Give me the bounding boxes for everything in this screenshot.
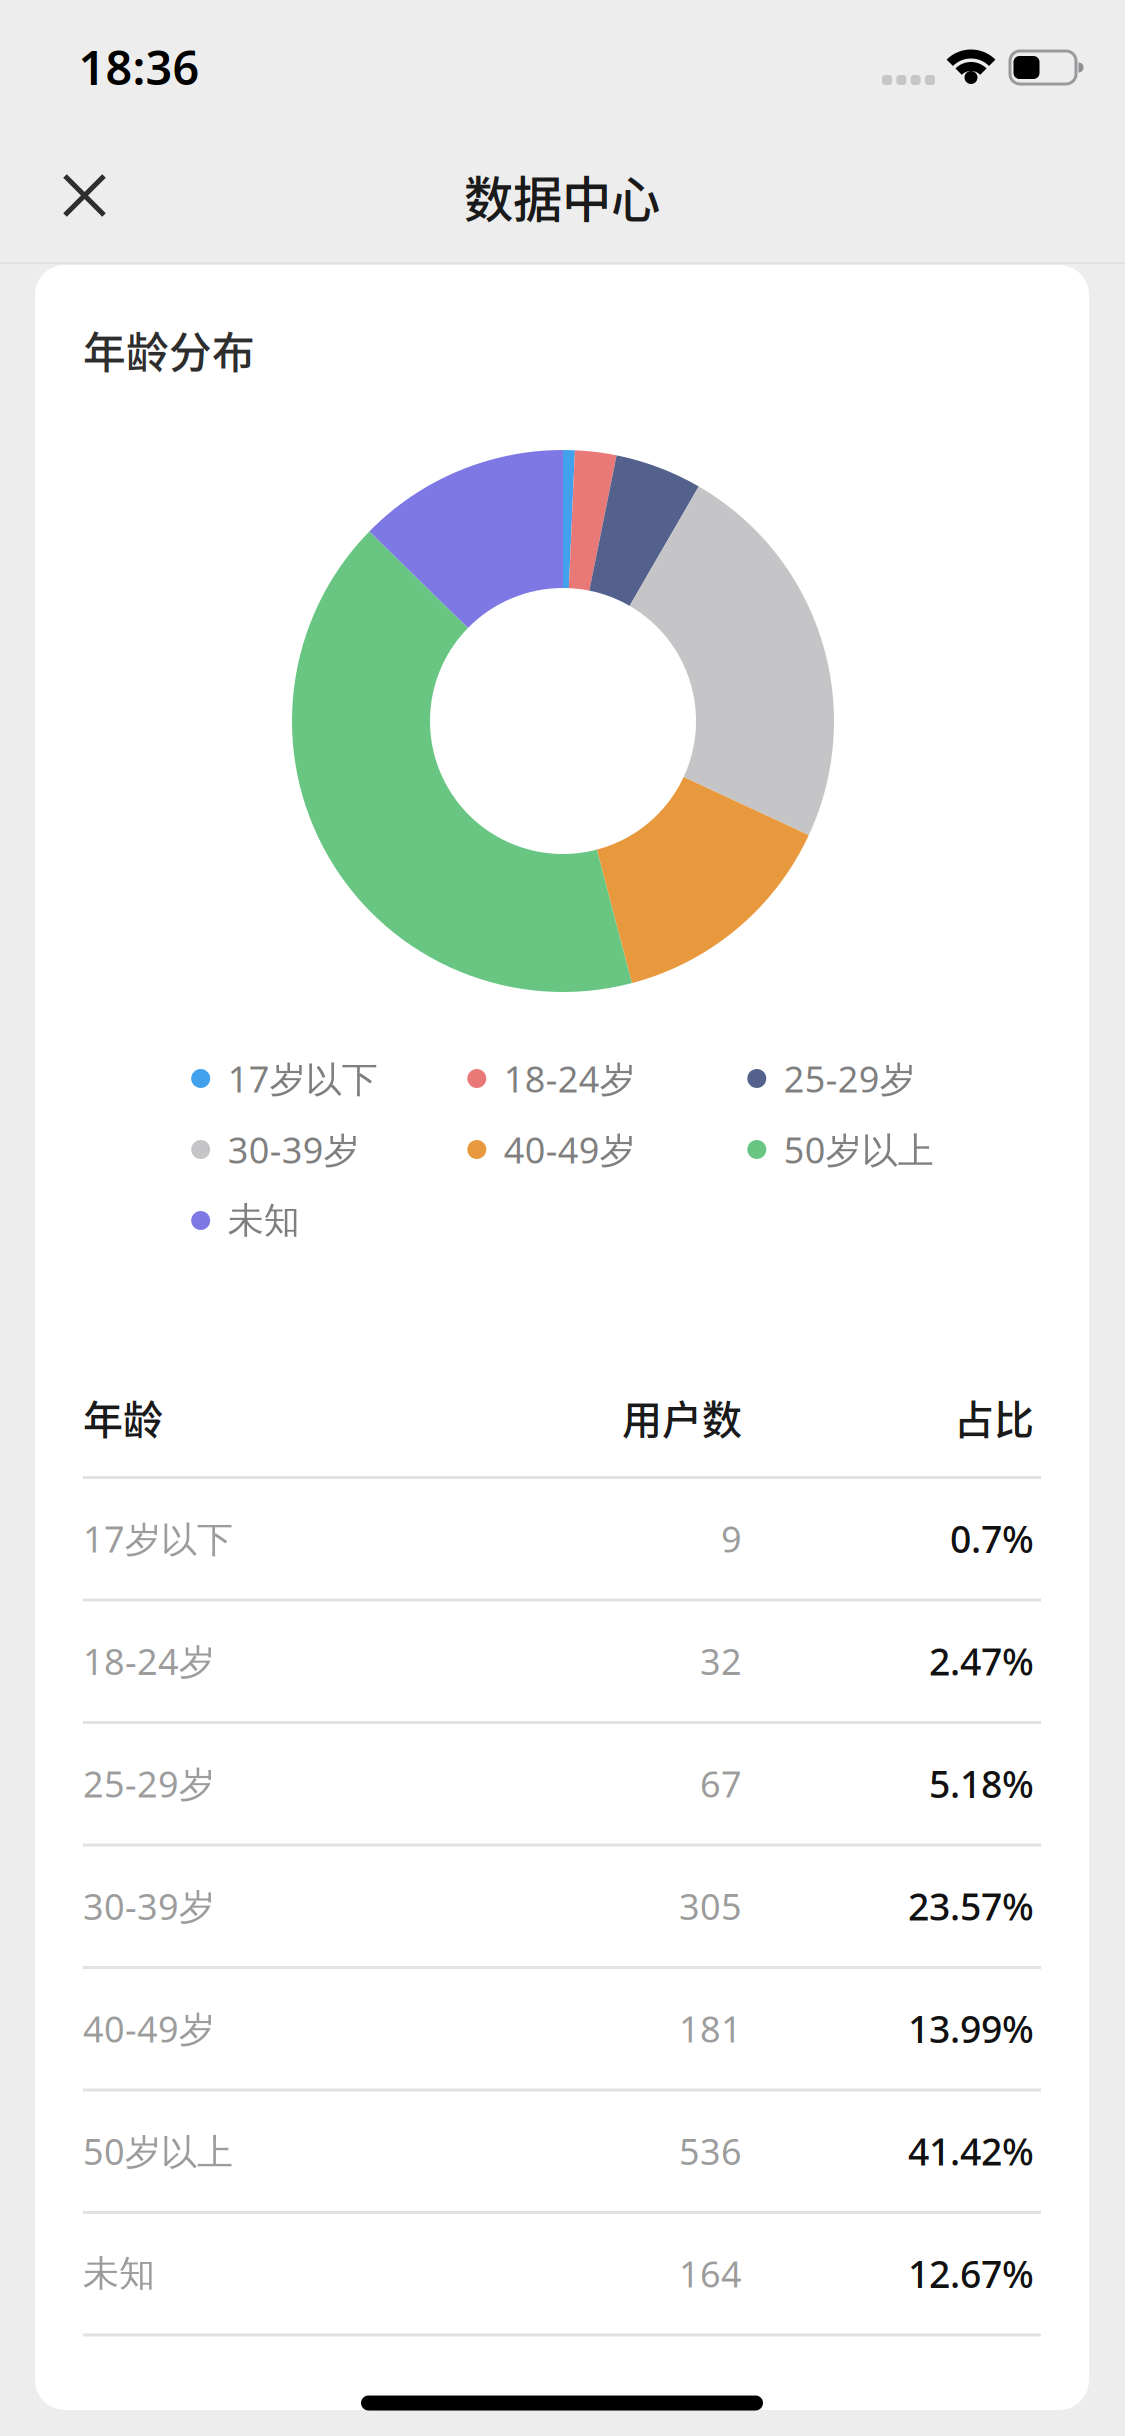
staticText: 17岁以下 xyxy=(83,1515,233,1562)
staticText: 25-29岁 xyxy=(83,1760,215,1807)
button[interactable]: Close xyxy=(24,135,144,255)
staticText: 181 xyxy=(679,2005,742,2052)
staticText: 32 xyxy=(700,1637,742,1685)
staticText: 50岁以上 xyxy=(784,1126,934,1173)
staticText: 23.57% xyxy=(908,1881,1034,1931)
staticText: 17岁以下 xyxy=(228,1055,378,1102)
staticText: 未知 xyxy=(228,1198,300,1243)
staticText: 用户数 xyxy=(622,1388,742,1446)
staticText: 41.42% xyxy=(908,2126,1034,2176)
staticText: 164 xyxy=(679,2250,742,2297)
staticText: 40-49岁 xyxy=(504,1126,636,1173)
staticText: 未知 xyxy=(83,2251,155,2296)
staticText: 305 xyxy=(679,1882,742,1930)
staticText: 30-39岁 xyxy=(83,1882,215,1930)
staticText: 18-24岁 xyxy=(83,1637,215,1685)
staticText: 67 xyxy=(700,1760,742,1807)
staticText: 12.67% xyxy=(908,2249,1034,2298)
staticText: 18-24岁 xyxy=(504,1055,636,1102)
staticText: 年龄分布 xyxy=(83,319,255,381)
staticText: 0.7% xyxy=(950,1514,1034,1563)
staticText: 5.18% xyxy=(929,1759,1034,1808)
staticText: 536 xyxy=(679,2127,742,2175)
staticText: 50岁以上 xyxy=(83,2127,233,2175)
staticText: 数据中心 xyxy=(464,160,660,232)
staticText: 9 xyxy=(721,1515,742,1562)
staticText: 年龄 xyxy=(83,1388,163,1446)
staticText: 25-29岁 xyxy=(784,1055,916,1102)
staticText: 30-39岁 xyxy=(228,1126,360,1173)
staticText: 18:36 xyxy=(78,36,199,98)
staticText: 占比 xyxy=(954,1388,1034,1446)
staticText: 2.47% xyxy=(929,1636,1034,1686)
staticText: 40-49岁 xyxy=(83,2005,215,2052)
staticText: 13.99% xyxy=(908,2004,1034,2053)
